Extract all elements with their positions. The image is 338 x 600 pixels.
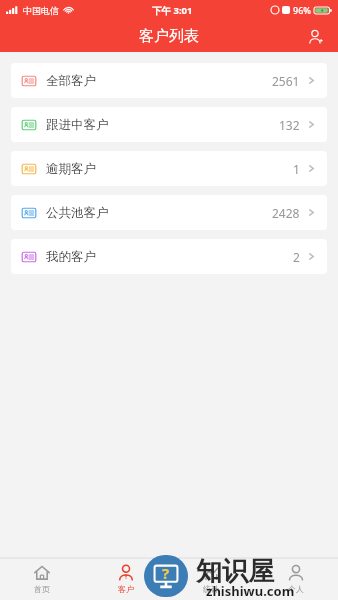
- staticText: 客户列表: [139, 27, 199, 46]
- staticText: 2561: [272, 73, 300, 89]
- staticText: 客户: [118, 584, 134, 594]
- staticText: 中国电信: [23, 5, 59, 16]
- button[interactable]: 公共池客户: [11, 195, 327, 230]
- staticText: zhishiwu.com: [206, 582, 295, 600]
- staticText: 统计: [203, 584, 219, 594]
- staticText: 个人: [288, 584, 304, 594]
- staticText: 知识屋: [196, 555, 274, 588]
- staticText: 公共池客户: [46, 205, 109, 221]
- staticText: 2428: [272, 205, 300, 221]
- staticText: ?: [162, 563, 170, 583]
- staticText: 我的客户: [46, 249, 96, 265]
- button[interactable]: 个人: [253, 558, 338, 600]
- staticText: 首页: [34, 584, 50, 594]
- staticText: 逾期客户: [46, 161, 96, 177]
- staticText: 132: [279, 117, 300, 133]
- button[interactable]: 跟进中客户: [11, 107, 327, 142]
- button[interactable]: 客户: [84, 558, 168, 600]
- staticText: 下午 3:01: [152, 4, 193, 17]
- button[interactable]: 全部客户: [11, 63, 327, 98]
- button[interactable]: 逾期客户: [11, 151, 327, 186]
- button[interactable]: 我的客户: [11, 239, 327, 274]
- button[interactable]: 统计: [168, 558, 253, 600]
- staticText: 1: [293, 161, 300, 177]
- button[interactable]: Add customer: [302, 23, 328, 49]
- staticText: 2: [293, 249, 300, 265]
- button[interactable]: 首页: [0, 558, 84, 600]
- staticText: 96%: [293, 4, 311, 16]
- staticText: 跟进中客户: [46, 117, 109, 133]
- staticText: 全部客户: [46, 73, 96, 89]
